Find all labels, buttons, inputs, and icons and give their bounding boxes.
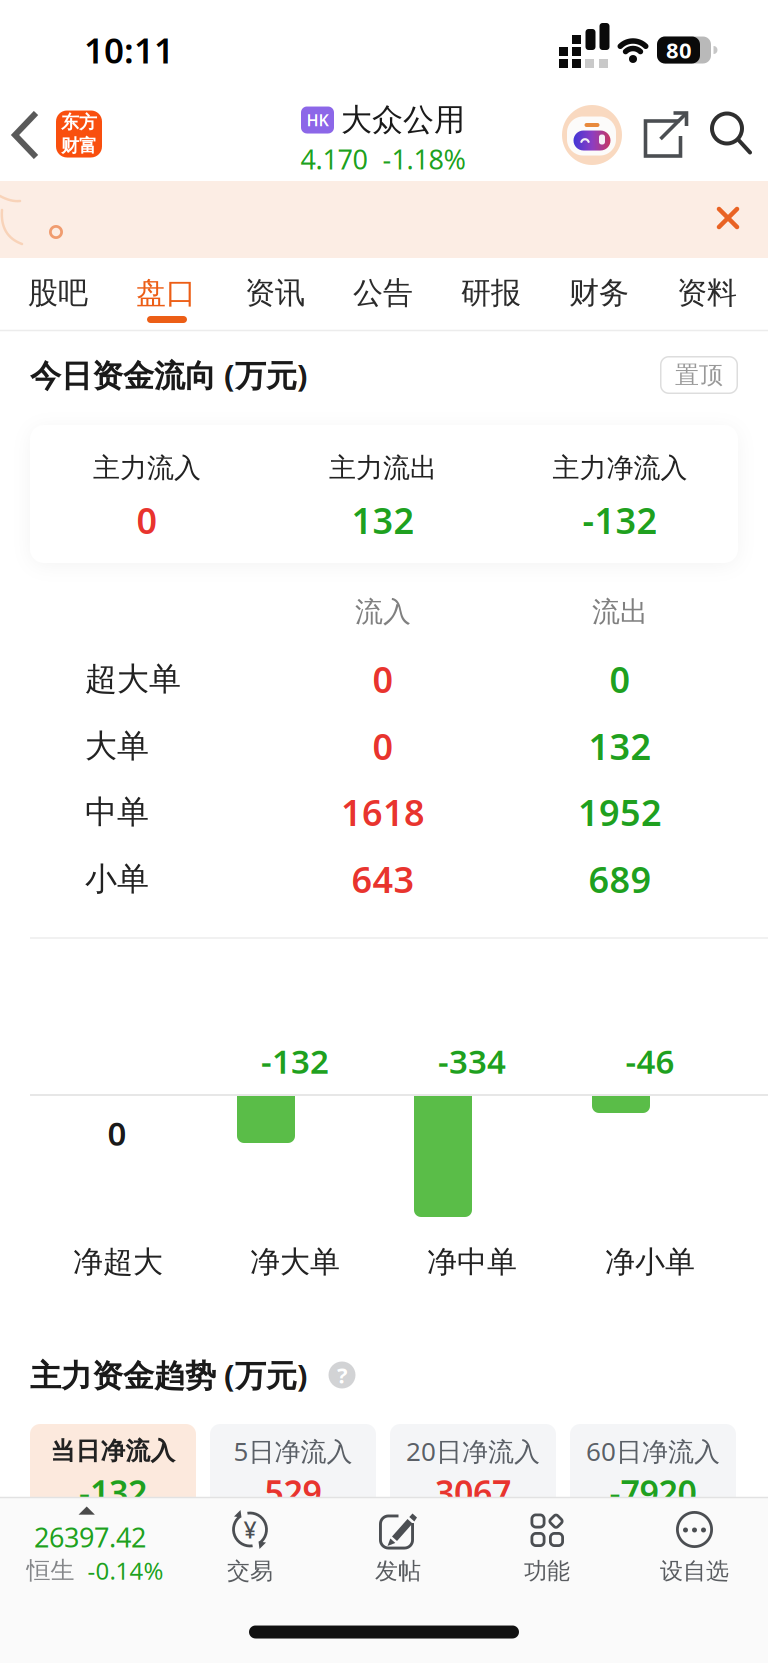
staticText: 功能 (524, 1556, 570, 1585)
staticText: -132 (582, 495, 657, 544)
staticText: 恒生 (26, 1555, 74, 1586)
button[interactable]: 盘口 (136, 264, 196, 322)
staticText: -334 (438, 1038, 506, 1083)
button[interactable]: 20日净流入 (390, 1424, 556, 1534)
staticText: -1.18% (382, 141, 465, 177)
staticText: 132 (351, 495, 414, 544)
staticText: 60日净流入 (586, 1433, 720, 1469)
staticText: 资料 (677, 274, 737, 312)
staticText: 132 (588, 721, 651, 770)
staticText: 0 (372, 721, 393, 770)
staticText: 股吧 (28, 274, 88, 312)
staticText: 80 (666, 35, 692, 65)
staticText: 公告 (353, 274, 413, 312)
staticText: 净中单 (427, 1243, 517, 1281)
staticText: 主力资金趋势 (万元) (30, 1354, 308, 1396)
button[interactable]: Share (643, 112, 688, 158)
staticText: 流入 (355, 594, 411, 630)
button[interactable]: 设自选 (634, 1493, 754, 1613)
staticText: 0 (136, 495, 157, 544)
staticText: HK (306, 109, 328, 131)
staticText: ? (337, 1360, 347, 1390)
staticText: -132 (261, 1038, 329, 1083)
staticText: 26397.42 (34, 1519, 146, 1555)
staticText: -46 (625, 1038, 674, 1083)
staticText: 3067 (435, 1469, 511, 1515)
staticText: 今日资金流向 (万元) (30, 354, 308, 396)
staticText: 1618 (341, 787, 425, 836)
button[interactable]: ¥ (190, 1493, 310, 1613)
staticText: 主力净流入 (552, 451, 687, 485)
staticText: 大单 (85, 726, 149, 766)
staticText: -7920 (609, 1469, 696, 1515)
button[interactable]: 助手 (561, 104, 623, 166)
button[interactable]: 资讯 (245, 264, 305, 322)
button[interactable]: 东方财富 (56, 110, 102, 157)
button[interactable]: 26397.42 (1, 1495, 191, 1621)
staticText: 超大单 (85, 659, 181, 699)
staticText: 主力流入 (93, 451, 201, 485)
staticText: 4.170 (300, 141, 367, 177)
staticText: 529 (264, 1469, 321, 1515)
staticText: 10:11 (84, 26, 174, 74)
button[interactable]: Search (710, 111, 752, 154)
staticText: 中单 (85, 792, 149, 832)
staticText: 盘口 (136, 274, 196, 312)
staticText: ¥ (243, 1514, 256, 1545)
button[interactable]: 发帖 (338, 1493, 458, 1613)
button[interactable]: 置顶 (660, 356, 738, 394)
staticText: 财富 (61, 134, 97, 157)
button[interactable]: 60日净流入 (570, 1424, 736, 1534)
button[interactable]: 关闭 (706, 196, 750, 240)
staticText: 交易 (227, 1556, 273, 1585)
staticText: 20日净流入 (406, 1433, 540, 1469)
staticText: 689 (588, 854, 651, 903)
button[interactable]: 5日净流入 (210, 1424, 376, 1534)
staticText: 净超大 (73, 1243, 163, 1281)
staticText: -0.14% (87, 1554, 163, 1587)
staticText: 5日净流入 (233, 1433, 352, 1469)
staticText: 净大单 (250, 1243, 340, 1281)
staticText: 0 (609, 654, 630, 703)
staticText: 主力流出 (329, 451, 437, 485)
button[interactable]: 当日净流入 (30, 1424, 196, 1534)
button[interactable]: 研报 (461, 264, 521, 322)
staticText: 设自选 (660, 1556, 729, 1585)
staticText: 发帖 (375, 1556, 421, 1585)
staticText: 0 (372, 654, 393, 703)
staticText: 研报 (461, 274, 521, 312)
staticText: 置顶 (675, 360, 723, 390)
button[interactable]: 说明 (328, 1361, 355, 1388)
button[interactable]: 功能 (487, 1493, 607, 1613)
staticText: 小单 (85, 859, 149, 899)
staticText: 0 (107, 1110, 126, 1155)
button[interactable]: Back (12, 109, 40, 161)
staticText: 643 (351, 854, 414, 903)
staticText: 净小单 (605, 1243, 695, 1281)
button[interactable]: 资料 (677, 264, 737, 322)
staticText: -132 (79, 1469, 147, 1515)
staticText: 大众公用 (341, 100, 465, 140)
button[interactable]: 股吧 (28, 264, 88, 322)
button[interactable]: 公告 (353, 264, 413, 322)
staticText: 当日净流入 (50, 1436, 175, 1466)
staticText: 1952 (578, 787, 662, 836)
button[interactable]: 财务 (569, 264, 629, 322)
staticText: 资讯 (245, 274, 305, 312)
staticText: 流出 (592, 594, 648, 630)
staticText: 财务 (569, 274, 629, 312)
staticText: 东方 (61, 111, 97, 133)
